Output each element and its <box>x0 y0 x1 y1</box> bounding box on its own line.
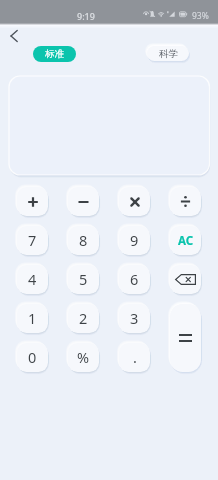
staticText: 科学 <box>159 48 178 60</box>
button[interactable]: Back <box>1 24 25 48</box>
staticText: 0 <box>28 347 37 367</box>
button[interactable]: % <box>68 343 99 372</box>
button[interactable]: Multiply <box>119 187 150 216</box>
staticText: 2 <box>79 308 88 328</box>
staticText: 3 <box>130 308 139 328</box>
button[interactable]: Plus <box>17 187 48 216</box>
button[interactable]: . <box>119 343 150 372</box>
button[interactable]: 5 <box>68 265 99 294</box>
button[interactable]: 1 <box>17 304 48 333</box>
staticText: 7 <box>28 230 37 250</box>
staticText: 1 <box>28 308 37 328</box>
staticText: 9 <box>130 230 139 250</box>
button[interactable]: 7 <box>17 226 48 255</box>
button[interactable]: Divide <box>170 187 201 216</box>
button[interactable]: 科学 <box>147 46 189 61</box>
staticText: 9:19 <box>77 10 95 22</box>
button[interactable]: 6 <box>119 265 150 294</box>
staticText: 6 <box>130 269 139 289</box>
button[interactable]: AC <box>170 226 201 255</box>
button[interactable]: Minus <box>68 187 99 216</box>
staticText: 93% <box>192 10 209 22</box>
button[interactable]: 9 <box>119 226 150 255</box>
staticText: 8 <box>79 230 88 250</box>
button[interactable]: Backspace <box>170 265 201 294</box>
staticText: AC <box>178 233 194 249</box>
staticText: % <box>77 347 90 367</box>
button[interactable]: 3 <box>119 304 150 333</box>
button[interactable]: 4 <box>17 265 48 294</box>
button[interactable]: 8 <box>68 226 99 255</box>
staticText: 5 <box>79 269 88 289</box>
staticText: . <box>133 347 137 367</box>
staticText: 4 <box>28 269 37 289</box>
button[interactable]: Equals <box>170 304 201 372</box>
button[interactable]: 0 <box>17 343 48 372</box>
button[interactable]: 标准 <box>33 46 76 62</box>
button[interactable]: 2 <box>68 304 99 333</box>
staticText: 标准 <box>45 48 64 60</box>
